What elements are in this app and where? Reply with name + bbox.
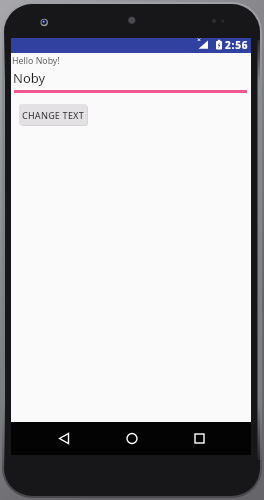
staticText: 2:56 — [225, 38, 249, 52]
staticText: CHANGE TEXT — [22, 109, 85, 121]
staticText: Noby — [13, 69, 46, 87]
staticText: Hello Noby! — [12, 55, 60, 67]
